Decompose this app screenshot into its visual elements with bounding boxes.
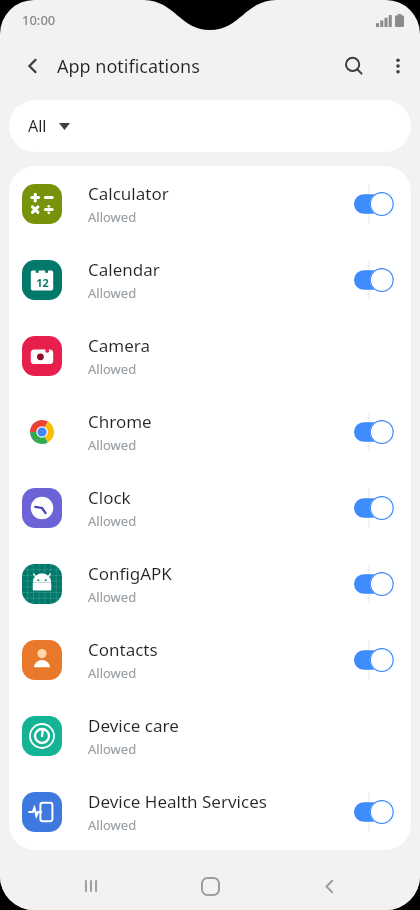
staticText: Chrome [88,410,152,433]
staticText: Device care [88,714,179,737]
staticText: Clock [88,486,131,509]
button[interactable]: Contacts [9,622,411,698]
button[interactable]: More options [376,44,420,88]
staticText: Allowed [88,436,137,454]
staticText: Allowed [88,360,137,378]
staticText: Allowed [88,588,137,606]
button[interactable]: Chrome [9,394,411,470]
button[interactable]: Home [182,862,238,910]
staticText: Allowed [88,816,137,834]
staticText: All [28,115,47,137]
staticText: Calendar [88,258,160,281]
button[interactable]: Camera [9,318,411,394]
staticText: Camera [88,334,150,357]
button[interactable]: Toggle Calendar notifications [350,260,402,300]
button[interactable]: Device care [9,698,411,774]
button[interactable]: Search [332,44,376,88]
button[interactable]: Calculator [9,166,411,242]
button[interactable]: Device Health Services [9,774,411,850]
button[interactable]: 12 [9,242,411,318]
button[interactable]: Clock [9,470,411,546]
staticText: Allowed [88,208,137,226]
staticText: 12 [36,275,49,290]
staticText: Calculator [88,182,169,205]
staticText: ConfigAPK [88,562,172,585]
staticText: App notifications [57,54,200,79]
staticText: Device Health Services [88,790,267,813]
button[interactable]: Toggle ConfigAPK notifications [350,564,402,604]
staticText: Allowed [88,284,137,302]
button[interactable]: ConfigAPK [9,546,411,622]
staticText: Allowed [88,512,137,530]
button[interactable]: Toggle Clock notifications [350,488,402,528]
button[interactable]: Toggle Calculator notifications [350,184,402,224]
staticText: Allowed [88,664,137,682]
button[interactable]: Toggle Contacts notifications [350,640,402,680]
button[interactable]: Toggle Chrome notifications [350,412,402,452]
button[interactable]: Recents [63,862,119,910]
staticText: Contacts [88,638,158,661]
staticText: 10:00 [22,11,56,29]
button[interactable]: Back [301,862,357,910]
button[interactable]: Back [12,45,54,87]
button[interactable]: All [9,100,411,152]
button[interactable]: Toggle Device Health Services notificati… [350,792,402,832]
staticText: Allowed [88,740,137,758]
